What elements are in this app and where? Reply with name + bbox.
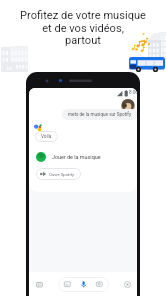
button[interactable]: Microphone [80, 281, 87, 288]
staticText: Ouvre Spotify [49, 172, 74, 177]
button[interactable]: Explore [32, 277, 46, 291]
button[interactable]: Ouvre Spotify [36, 168, 81, 180]
button[interactable]: mets de la musique sur Spotify [62, 109, 137, 120]
button[interactable]: Voilà [35, 131, 58, 142]
button[interactable]: Jouer de la musique [29, 150, 137, 164]
button[interactable]: Snapshot [120, 277, 134, 291]
staticText: mets de la musique sur Spotify [68, 112, 132, 117]
button[interactable]: Account [121, 99, 135, 113]
button[interactable]: Keyboard [64, 281, 71, 288]
staticText: Profitez de votre musique et de vos vidé… [20, 9, 146, 46]
staticText: 8:00 [129, 90, 137, 95]
staticText: Jouer de la musique [52, 154, 101, 160]
staticText: Voilà [41, 134, 52, 139]
button[interactable]: Google Lens [96, 281, 103, 288]
